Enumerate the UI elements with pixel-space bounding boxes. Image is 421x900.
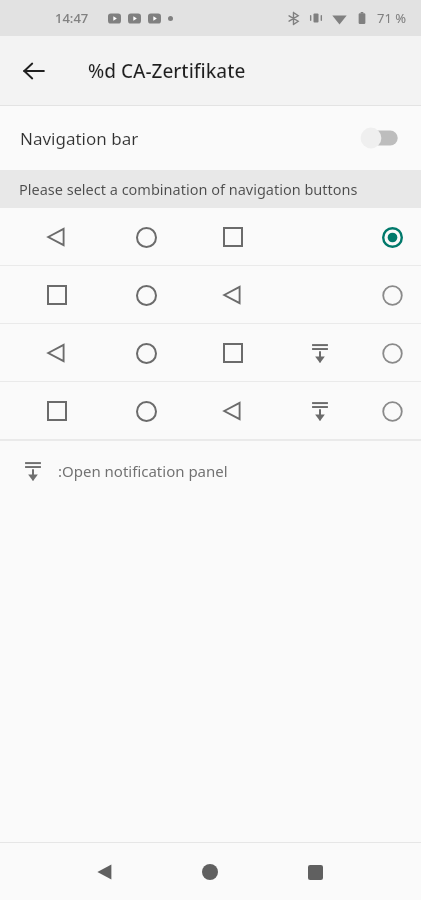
staticText: %d CA-Zertifikate xyxy=(88,58,246,84)
button[interactable]: Navigation bar xyxy=(0,106,421,170)
button[interactable]: Navigation button combination xyxy=(0,266,421,323)
button[interactable]: Recent apps xyxy=(291,848,339,896)
button[interactable]: Back xyxy=(10,47,58,95)
staticText: 71 % xyxy=(377,9,407,27)
staticText: Please select a combination of navigatio… xyxy=(19,179,358,199)
button[interactable]: Home xyxy=(186,848,234,896)
staticText: Navigation bar xyxy=(20,127,139,150)
button[interactable]: Navigation button combination xyxy=(0,382,421,439)
staticText: :Open notification panel xyxy=(58,461,228,481)
button[interactable]: Navigation button combination xyxy=(0,208,421,265)
staticText: 14:47 xyxy=(55,9,89,27)
button[interactable]: Navigation button combination xyxy=(0,324,421,381)
button[interactable]: Back xyxy=(81,848,129,896)
